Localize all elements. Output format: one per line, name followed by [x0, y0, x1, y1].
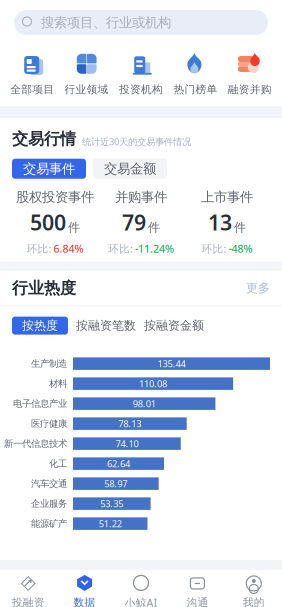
staticText: 按融资金额: [144, 318, 204, 333]
staticText: 行业领域: [65, 83, 109, 96]
staticText: 交易金额: [104, 161, 156, 177]
staticText: 新一代信息技术: [4, 438, 67, 449]
staticText: 79: [122, 208, 146, 236]
button[interactable]: 按热度: [12, 317, 68, 335]
staticText: 110.08: [139, 377, 167, 390]
button[interactable]: 搜索项目、行业或机构: [14, 10, 268, 35]
staticText: 行业热度: [12, 278, 76, 298]
staticText: 环比:: [201, 241, 226, 256]
staticText: 500: [30, 208, 66, 236]
staticText: 78.13: [118, 417, 141, 430]
staticText: 环比:: [26, 241, 51, 256]
staticText: 135.44: [157, 357, 185, 370]
staticText: 沟通: [186, 596, 208, 607]
button[interactable]: 数据: [56, 574, 113, 607]
button[interactable]: 交易事件: [12, 159, 86, 179]
staticText: 融资并购: [228, 83, 272, 96]
button[interactable]: 热门榜单: [168, 51, 223, 96]
staticText: 全部项目: [10, 83, 54, 96]
staticText: 汽车交通: [31, 478, 67, 489]
staticText: 上市事件: [201, 189, 253, 205]
button[interactable]: 沟通: [169, 574, 226, 607]
button[interactable]: 全部项目: [5, 51, 59, 96]
button[interactable]: 投资机构: [114, 51, 168, 96]
staticText: 交易行情: [12, 129, 76, 149]
staticText: 投融资: [12, 596, 45, 607]
button[interactable]: 小鲸AI: [113, 573, 169, 607]
staticText: 98.01: [133, 397, 156, 410]
button[interactable]: 按融资金额: [144, 317, 204, 335]
staticText: 化工: [49, 458, 67, 469]
staticText: 医疗健康: [31, 418, 67, 429]
button[interactable]: 我的: [226, 574, 282, 607]
button[interactable]: 投融资: [0, 574, 56, 607]
staticText: 我的: [243, 596, 265, 607]
staticText: -11.24%: [135, 241, 174, 256]
staticText: 件: [68, 220, 80, 235]
staticText: 能源矿产: [31, 518, 67, 529]
staticText: 58.97: [104, 477, 127, 490]
staticText: 交易事件: [23, 161, 75, 177]
staticText: 件: [148, 220, 160, 235]
button[interactable]: 融资并购: [223, 51, 277, 96]
staticText: 股权投资事件: [16, 189, 94, 205]
button[interactable]: 交易金额: [93, 159, 167, 179]
staticText: 企业服务: [31, 498, 67, 509]
staticText: 6.84%: [53, 241, 83, 256]
staticText: 74.10: [115, 437, 138, 450]
staticText: 51.22: [99, 517, 122, 530]
staticText: 按热度: [22, 318, 58, 333]
staticText: -48%: [228, 241, 252, 256]
button[interactable]: 按融资笔数: [76, 317, 136, 335]
staticText: 统计近30天的交易事件情况: [82, 135, 191, 148]
staticText: 按融资笔数: [76, 318, 136, 333]
button[interactable]: 更多: [246, 281, 270, 295]
staticText: 投资机构: [119, 83, 163, 96]
staticText: 62.64: [107, 457, 130, 470]
staticText: 53.35: [100, 497, 123, 510]
staticText: 件: [234, 220, 246, 235]
staticText: 材料: [49, 378, 67, 389]
button[interactable]: 行业领域: [59, 51, 114, 96]
staticText: 生产制造: [31, 358, 67, 369]
staticText: 搜索项目、行业或机构: [41, 14, 171, 31]
staticText: 小鲸AI: [124, 595, 157, 607]
staticText: 并购事件: [115, 189, 167, 205]
staticText: 热门榜单: [173, 83, 217, 96]
staticText: 数据: [74, 596, 96, 607]
staticText: 环比:: [108, 241, 133, 256]
staticText: 更多: [246, 281, 270, 295]
staticText: 电子信息产业: [13, 398, 67, 409]
staticText: 13: [208, 208, 232, 236]
